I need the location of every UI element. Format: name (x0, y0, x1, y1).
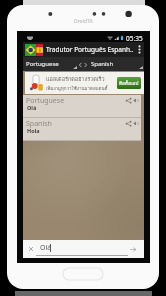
staticText: DroidTA (74, 18, 93, 25)
staticText: แอลเตอร์กดอย่างรวดเร็ว (46, 75, 105, 84)
staticText: Olá (40, 243, 52, 253)
button[interactable]: Clear (27, 245, 35, 253)
button[interactable]: Spanish (23, 118, 141, 141)
button[interactable]: Share (125, 97, 132, 104)
button[interactable]: Share (125, 120, 132, 127)
button[interactable]: Portuguese (23, 95, 141, 118)
staticText: Olá (27, 104, 37, 111)
staticText: Portuguese (26, 96, 65, 106)
button[interactable]: ติดตั้งแอป (117, 77, 141, 89)
button[interactable]: Spanish (88, 57, 144, 71)
staticText: ติดตั้งแอป (119, 80, 139, 87)
staticText: 05:35 (126, 34, 143, 42)
button[interactable]: แอลเตอร์กดอย่างรวดเร็ว (25, 72, 144, 94)
button[interactable]: Olá (36, 243, 128, 256)
button[interactable]: Listen (133, 97, 140, 104)
button[interactable]: More options (134, 42, 144, 57)
staticText: Spanish (91, 60, 114, 68)
button[interactable]: Listen (133, 120, 140, 127)
button[interactable]: Portuguese (23, 57, 78, 71)
button[interactable]: Translate (128, 244, 138, 254)
staticText: Spanish (26, 119, 52, 129)
staticText: Portuguese (26, 60, 59, 68)
button[interactable]: Swap languages (78, 57, 88, 71)
staticText: เพิ่มเกมูทุกวาใช้งานมาตสแตนดี้ (46, 85, 108, 92)
staticText: Hola (27, 127, 40, 134)
staticText: Tradutor Português Espanh.. (46, 45, 134, 54)
